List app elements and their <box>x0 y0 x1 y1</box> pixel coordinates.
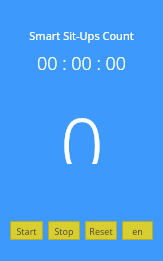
staticText: Stop <box>54 225 74 237</box>
button[interactable]: Stop <box>48 221 80 240</box>
staticText: 00 : 00 : 00 <box>0 51 163 76</box>
button[interactable]: Reset <box>85 221 117 240</box>
staticText: Reset <box>89 225 113 237</box>
staticText: en <box>132 225 143 237</box>
button[interactable]: Start <box>10 221 43 240</box>
staticText: 0 <box>60 92 104 164</box>
button[interactable]: en <box>122 221 153 240</box>
staticText: Smart Sit-Ups Count <box>0 28 163 43</box>
staticText: Start <box>16 225 37 237</box>
